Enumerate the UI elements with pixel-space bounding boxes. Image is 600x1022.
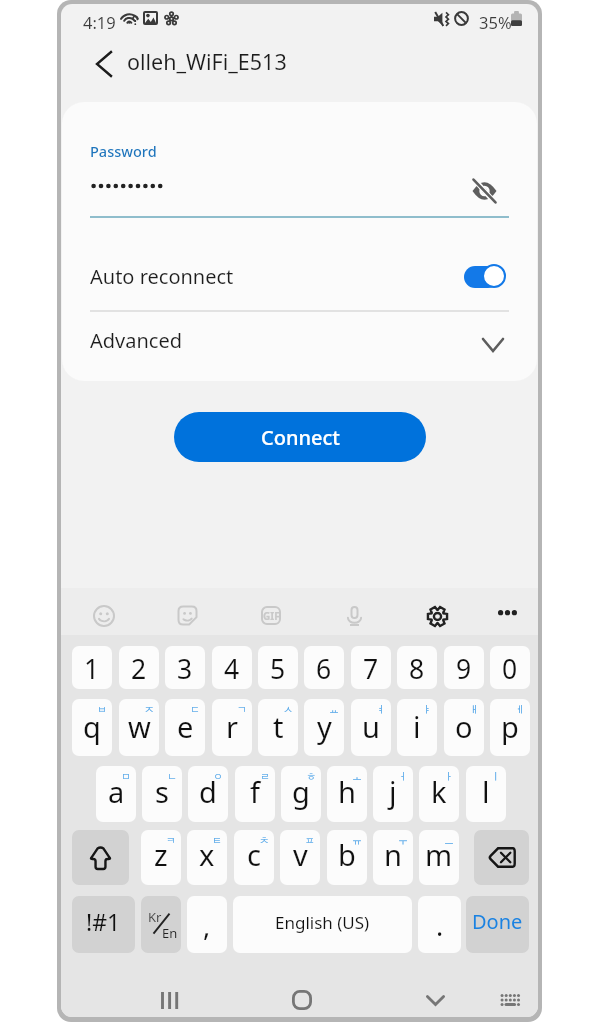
button[interactable]: r [212,699,252,756]
button[interactable]: Advanced [62,315,537,381]
staticText: !#1 [86,906,121,937]
staticText: u [362,707,380,746]
button[interactable]: Keyboard settings [426,605,449,628]
button[interactable]: p [490,699,530,756]
button[interactable]: Stickers [177,605,198,626]
staticText: ㅜ [398,834,408,847]
staticText: x [199,835,215,874]
button[interactable]: f [235,766,275,822]
button[interactable]: !#1 [72,896,135,953]
button[interactable]: More options [498,602,521,622]
button[interactable]: Show password [459,169,509,213]
button[interactable]: GIF [261,606,281,625]
button[interactable]: 8 [397,646,437,689]
button[interactable]: h [327,766,367,822]
staticText: 7 [363,651,379,687]
staticText: c [247,835,261,874]
button[interactable]: Recents [148,983,190,1017]
button[interactable]: Hide keyboard [413,983,457,1017]
button[interactable]: 0 [490,646,530,689]
button[interactable]: q [72,699,112,756]
button[interactable] [72,830,129,885]
button[interactable]: 7 [351,646,391,689]
staticText: ㅓ [398,770,408,783]
staticText: k [431,772,447,811]
staticText: 3 [177,651,193,687]
button[interactable]: z [141,830,181,885]
staticText: l [482,772,490,811]
button[interactable]: Done [466,896,529,953]
button[interactable]: 1 [72,646,112,689]
staticText: ㅔ [515,703,525,716]
button[interactable]: s [142,766,182,822]
button[interactable]: . [418,896,461,953]
staticText: 2 [131,651,147,687]
button[interactable]: a [96,766,136,822]
button[interactable]: , [187,896,227,953]
staticText: ㄱ [237,703,247,716]
staticText: m [425,835,453,874]
staticText: o [455,707,473,746]
button[interactable]: u [351,699,391,756]
staticText: q [83,707,101,746]
button[interactable]: j [373,766,413,822]
button[interactable]: n [373,830,413,885]
staticText: ㅡ [444,834,454,847]
button[interactable]: Kr [141,896,181,953]
button[interactable]: Emoji [93,605,115,627]
staticText: ㅐ [469,703,479,716]
staticText: Connect [261,424,340,451]
staticText: 0 [502,651,518,687]
button[interactable]: 9 [444,646,484,689]
staticText: p [501,707,519,746]
button[interactable]: o [444,699,484,756]
button[interactable] [464,264,508,288]
button[interactable]: i [397,699,437,756]
button[interactable]: x [187,830,227,885]
staticText: 8 [409,651,425,687]
button[interactable]: 6 [304,646,344,689]
button[interactable]: 3 [165,646,205,689]
staticText: y [317,707,332,746]
button[interactable] [474,830,529,885]
button[interactable]: w [119,699,159,756]
staticText: d [199,772,217,811]
staticText: w [128,707,151,746]
button[interactable]: Auto reconnect [62,242,537,314]
button[interactable]: 4 [212,646,252,689]
button[interactable]: t [258,699,298,756]
staticText: v [293,835,308,874]
staticText: En [162,924,178,942]
button[interactable]: g [281,766,321,822]
button[interactable]: 5 [258,646,298,689]
button[interactable]: Home [280,983,324,1017]
button[interactable]: m [419,830,459,885]
staticText: e [177,707,194,746]
button[interactable]: y [304,699,344,756]
staticText: ㅈ [144,703,154,716]
button[interactable]: v [280,830,320,885]
button[interactable]: l [466,766,506,822]
staticText: ㅍ [305,834,315,847]
button[interactable]: Change keyboard [488,983,532,1017]
button[interactable]: English (US) [233,896,412,953]
staticText: a [108,772,125,811]
staticText: ㅅ [283,703,293,716]
staticText: ㄹ [260,770,270,783]
staticText: olleh_WiFi_E513 [127,47,287,76]
staticText: i [413,707,421,746]
button[interactable]: Back [84,44,124,84]
button[interactable]: Voice input [347,606,362,626]
staticText: 35% [479,11,512,33]
staticText: ㅎ [306,770,316,783]
button[interactable]: c [234,830,274,885]
button[interactable]: Connect [174,412,426,462]
staticText: , [203,907,211,944]
button[interactable]: d [188,766,228,822]
button[interactable]: e [165,699,205,756]
staticText: 5 [270,651,286,687]
button[interactable]: 2 [119,646,159,689]
button[interactable]: k [419,766,459,822]
staticText: ㅋ [166,834,176,847]
button[interactable]: b [327,830,367,885]
